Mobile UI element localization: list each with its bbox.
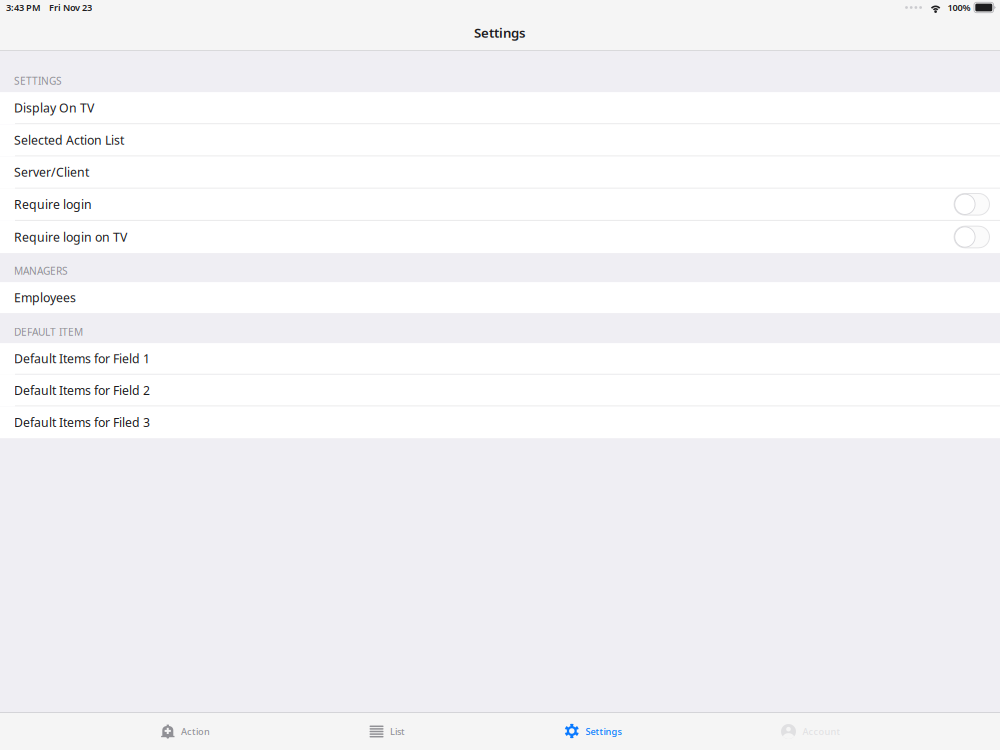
staticText: MANAGERS bbox=[14, 264, 68, 278]
staticText: Settings bbox=[474, 24, 526, 42]
staticText: Require login on TV bbox=[14, 229, 127, 245]
button[interactable]: Selected Action List bbox=[0, 124, 1000, 156]
staticText: Settings bbox=[585, 725, 621, 738]
staticText: SETTINGS bbox=[14, 74, 62, 88]
button[interactable]: Settings bbox=[565, 713, 621, 750]
button[interactable]: Require login on TV bbox=[0, 221, 1000, 253]
staticText: Selected Action List bbox=[14, 131, 124, 148]
staticText: Account bbox=[802, 725, 840, 738]
staticText: Default Items for Field 2 bbox=[14, 382, 150, 398]
button[interactable]: Require login bbox=[0, 189, 1000, 221]
button[interactable]: Display On TV bbox=[0, 92, 1000, 124]
button[interactable]: Default Items for Field 2 bbox=[0, 375, 1000, 406]
staticText: 3:43 PM bbox=[6, 1, 41, 14]
button[interactable]: Default Items for Field 1 bbox=[0, 343, 1000, 375]
staticText: List bbox=[390, 725, 405, 738]
button[interactable]: Action bbox=[161, 713, 210, 750]
staticText: Server/Client bbox=[14, 164, 89, 180]
staticText: Default Items for Filed 3 bbox=[14, 414, 150, 431]
staticText: DEFAULT ITEM bbox=[14, 325, 83, 339]
staticText: Employees bbox=[14, 289, 76, 306]
button[interactable]: List bbox=[369, 713, 405, 750]
button[interactable]: Account bbox=[781, 713, 840, 750]
staticText: Require login bbox=[14, 196, 92, 213]
staticText: Display On TV bbox=[14, 99, 94, 116]
staticText: Action bbox=[181, 725, 210, 738]
button[interactable]: Default Items for Filed 3 bbox=[0, 406, 1000, 438]
staticText: Fri Nov 23 bbox=[49, 1, 92, 14]
staticText: Default Items for Field 1 bbox=[14, 350, 150, 367]
button[interactable]: Employees bbox=[0, 282, 1000, 313]
staticText: 100% bbox=[947, 1, 970, 14]
button[interactable]: Server/Client bbox=[0, 156, 1000, 189]
